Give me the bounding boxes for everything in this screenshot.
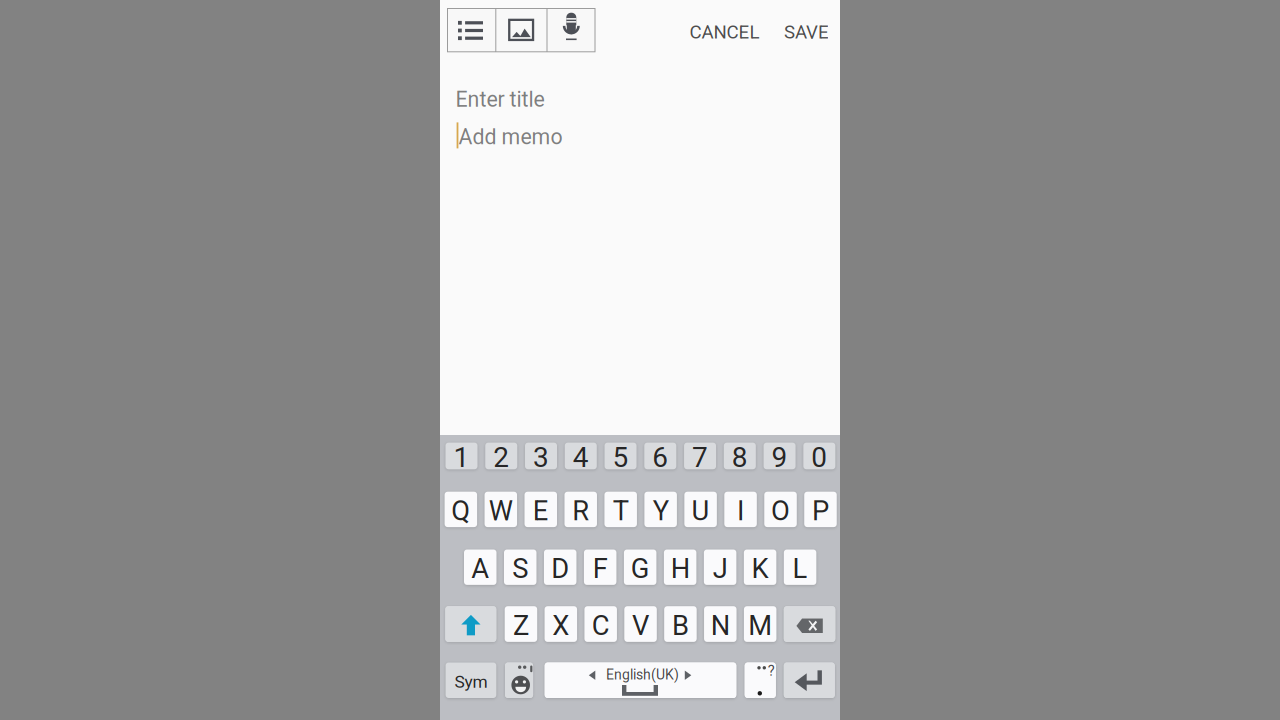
staticText: R: [572, 495, 589, 527]
staticText: K: [752, 553, 769, 585]
button[interactable]: 7: [684, 443, 716, 469]
button[interactable]: F: [584, 549, 616, 585]
staticText: 4: [573, 441, 589, 474]
button[interactable]: J: [704, 549, 736, 585]
button[interactable]: Backspace: [784, 606, 835, 642]
staticText: H: [671, 553, 690, 585]
button[interactable]: N: [704, 606, 736, 642]
button[interactable]: B: [664, 606, 697, 642]
button[interactable]: Return: [784, 662, 835, 698]
staticText: 8: [732, 441, 748, 474]
button[interactable]: 4: [565, 443, 597, 469]
staticText: P: [812, 495, 829, 527]
button[interactable]: Checklist: [447, 8, 495, 52]
button[interactable]: Insert image: [496, 8, 546, 52]
staticText: 1: [453, 441, 469, 474]
staticText: N: [711, 609, 730, 641]
staticText: 0: [811, 441, 827, 474]
button[interactable]: 2: [485, 443, 517, 469]
staticText: 9: [772, 441, 788, 474]
button[interactable]: T: [604, 492, 637, 527]
button[interactable]: 1: [445, 443, 477, 469]
button[interactable]: Sym: [446, 662, 496, 698]
staticText: F: [593, 553, 608, 585]
staticText: U: [692, 495, 710, 527]
button[interactable]: CANCEL: [684, 19, 766, 45]
staticText: CANCEL: [690, 21, 760, 43]
staticText: O: [771, 495, 790, 527]
button[interactable]: P: [804, 492, 837, 527]
button[interactable]: H: [664, 549, 696, 585]
button[interactable]: E: [524, 492, 557, 527]
button[interactable]: R: [564, 492, 597, 527]
staticText: L: [793, 553, 808, 585]
staticText: 2: [493, 441, 509, 474]
staticText: T: [613, 495, 629, 527]
staticText: A: [471, 553, 489, 585]
staticText: M: [748, 609, 772, 641]
staticText: 3: [533, 441, 549, 474]
staticText: X: [552, 609, 569, 641]
button[interactable]: 0: [803, 443, 835, 469]
staticText: S: [512, 553, 528, 585]
staticText: E: [533, 495, 549, 527]
staticText: Add memo: [458, 124, 562, 149]
button[interactable]: Space: [545, 662, 736, 698]
staticText: Y: [653, 495, 669, 527]
button[interactable]: 5: [604, 443, 636, 469]
button[interactable]: Punctuation: [745, 662, 776, 698]
staticText: 5: [612, 441, 628, 474]
button[interactable]: 9: [764, 443, 796, 469]
staticText: J: [713, 553, 728, 585]
button[interactable]: K: [744, 549, 776, 585]
button[interactable]: L: [784, 549, 816, 585]
staticText: Sym: [454, 672, 487, 692]
staticText: G: [631, 553, 650, 585]
button[interactable]: C: [584, 606, 617, 642]
staticText: SAVE: [784, 21, 829, 43]
button[interactable]: Z: [505, 606, 537, 642]
staticText: C: [592, 609, 610, 641]
button[interactable]: V: [624, 606, 657, 642]
staticText: English(UK): [606, 666, 679, 683]
button[interactable]: Voice recording: [547, 8, 595, 52]
button[interactable]: W: [485, 492, 517, 527]
button[interactable]: M: [744, 606, 776, 642]
button[interactable]: U: [684, 492, 717, 527]
staticText: ?: [768, 662, 775, 679]
button[interactable]: Shift: [445, 606, 496, 642]
staticText: D: [551, 553, 569, 585]
button[interactable]: Emoji: [505, 662, 533, 698]
button[interactable]: X: [545, 606, 577, 642]
staticText: 7: [692, 441, 708, 474]
button[interactable]: 3: [525, 443, 557, 469]
button[interactable]: S: [504, 549, 536, 585]
button[interactable]: A: [464, 549, 496, 585]
staticText: 6: [652, 441, 668, 474]
button[interactable]: 6: [644, 443, 676, 469]
staticText: Z: [513, 609, 529, 641]
button[interactable]: Q: [445, 492, 477, 527]
button[interactable]: I: [724, 492, 757, 527]
staticText: I: [737, 495, 744, 527]
button[interactable]: 8: [724, 443, 756, 469]
button[interactable]: O: [764, 492, 797, 527]
button[interactable]: D: [544, 549, 576, 585]
button[interactable]: G: [624, 549, 656, 585]
staticText: W: [489, 495, 513, 527]
button[interactable]: Y: [644, 492, 677, 527]
staticText: Enter title: [455, 87, 544, 112]
button[interactable]: SAVE: [778, 19, 836, 45]
staticText: V: [632, 609, 649, 641]
staticText: B: [672, 609, 689, 641]
staticText: Q: [451, 495, 470, 527]
